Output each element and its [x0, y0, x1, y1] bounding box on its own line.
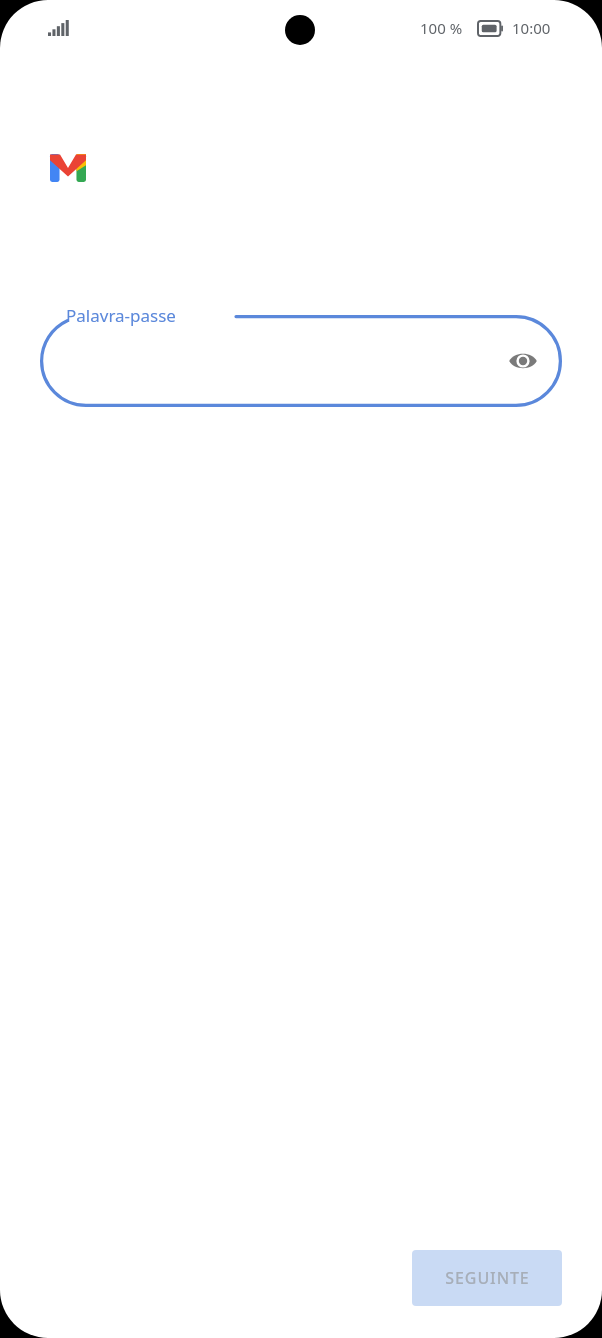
staticText: SEGUINTE — [445, 1267, 530, 1289]
staticText: 100 % — [420, 18, 463, 38]
staticText: Palavra-passe — [66, 304, 176, 327]
button[interactable]: Mostrar palavra-passe — [40, 315, 562, 407]
button[interactable]: Mostrar palavra-passe — [501, 339, 545, 383]
button[interactable]: SEGUINTE — [412, 1250, 562, 1306]
staticText: 10:00 — [512, 18, 551, 38]
